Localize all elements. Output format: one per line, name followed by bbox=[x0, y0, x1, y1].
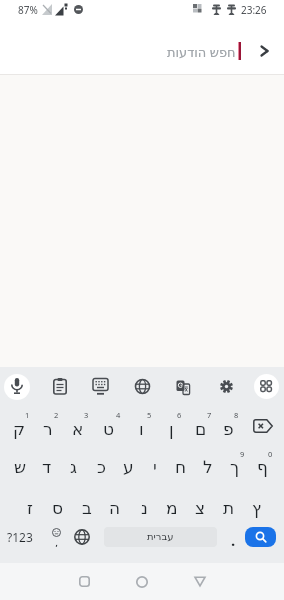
staticText: ה bbox=[109, 498, 121, 518]
staticText: 8 bbox=[234, 410, 239, 420]
staticText: ר bbox=[43, 419, 53, 439]
button[interactable]: א bbox=[64, 410, 92, 448]
button[interactable] bbox=[53, 378, 67, 395]
button[interactable]: ב bbox=[73, 489, 101, 527]
button[interactable]: ך bbox=[221, 448, 249, 486]
staticText: חפש הודעות bbox=[167, 43, 236, 61]
staticText: מ bbox=[166, 498, 178, 518]
button[interactable]: ה bbox=[101, 489, 129, 527]
button[interactable]: ת bbox=[215, 489, 243, 527]
staticText: נ bbox=[141, 498, 148, 518]
button[interactable]: ס bbox=[44, 489, 72, 527]
staticText: 9 bbox=[240, 449, 245, 459]
button[interactable]: ט bbox=[95, 410, 123, 448]
staticText: 6 bbox=[177, 410, 182, 420]
staticText: א bbox=[72, 419, 84, 439]
button[interactable] bbox=[245, 527, 276, 547]
button[interactable]: ג bbox=[60, 448, 88, 486]
staticText: פ bbox=[223, 419, 234, 439]
button[interactable]: מ bbox=[158, 489, 186, 527]
button[interactable]: פ bbox=[214, 410, 242, 448]
button[interactable] bbox=[253, 419, 273, 433]
button[interactable]: ו bbox=[127, 410, 155, 448]
button[interactable]: ם bbox=[187, 410, 215, 448]
staticText: ג bbox=[70, 457, 78, 477]
staticText: עברית bbox=[147, 531, 174, 543]
button[interactable] bbox=[258, 44, 270, 58]
button[interactable] bbox=[135, 379, 150, 394]
button[interactable]: עברית bbox=[104, 527, 217, 547]
button[interactable] bbox=[176, 380, 190, 395]
staticText: ש bbox=[14, 457, 27, 477]
staticText: ס bbox=[52, 498, 64, 518]
staticText: 0 bbox=[268, 449, 273, 459]
staticText: 5 bbox=[147, 410, 152, 420]
staticText: ?123 bbox=[7, 529, 33, 545]
staticText: ם bbox=[195, 419, 207, 439]
staticText: ב bbox=[82, 498, 92, 518]
staticText: 23:26 bbox=[241, 3, 267, 17]
button[interactable] bbox=[194, 576, 206, 587]
button[interactable]: ן bbox=[157, 410, 185, 448]
staticText: ת bbox=[223, 498, 235, 518]
staticText: ץ bbox=[252, 498, 262, 518]
staticText: ק bbox=[13, 419, 26, 439]
button[interactable] bbox=[4, 374, 30, 400]
staticText: 2 bbox=[54, 410, 59, 420]
button[interactable]: ק bbox=[5, 410, 33, 448]
staticText: ך bbox=[230, 457, 240, 477]
button[interactable]: . bbox=[226, 530, 240, 548]
button[interactable] bbox=[46, 524, 66, 544]
button[interactable]: ץ bbox=[243, 489, 271, 527]
button[interactable]: כ bbox=[87, 448, 115, 486]
button[interactable]: ש bbox=[6, 448, 34, 486]
staticText: 7 bbox=[207, 410, 212, 420]
staticText: 87% bbox=[18, 3, 38, 17]
staticText: ח bbox=[175, 457, 187, 477]
staticText: ד bbox=[42, 457, 52, 477]
button[interactable] bbox=[74, 529, 90, 545]
staticText: ע bbox=[123, 457, 134, 477]
button[interactable] bbox=[79, 576, 90, 587]
button[interactable]: צ bbox=[186, 489, 214, 527]
staticText: 3 bbox=[84, 410, 89, 420]
button[interactable]: ע bbox=[114, 448, 142, 486]
button[interactable] bbox=[93, 378, 108, 395]
staticText: י bbox=[153, 457, 157, 477]
staticText: כ bbox=[97, 457, 106, 477]
button[interactable]: ל bbox=[194, 448, 222, 486]
staticText: צ bbox=[195, 498, 206, 518]
button[interactable]: י bbox=[141, 448, 169, 486]
staticText: 1 bbox=[25, 410, 30, 420]
button[interactable] bbox=[219, 379, 234, 394]
button[interactable]: נ bbox=[130, 489, 158, 527]
staticText: ז bbox=[27, 498, 33, 518]
button[interactable]: ד bbox=[33, 448, 61, 486]
staticText: . bbox=[231, 530, 236, 548]
button[interactable] bbox=[136, 576, 148, 588]
staticText: ף bbox=[257, 457, 268, 477]
staticText: ן bbox=[169, 419, 174, 439]
staticText: ל bbox=[203, 457, 213, 477]
button[interactable]: ?123 bbox=[2, 525, 38, 549]
button[interactable]: ז bbox=[16, 489, 44, 527]
staticText: 4 bbox=[116, 410, 121, 420]
staticText: ו bbox=[139, 419, 144, 439]
staticText: ט bbox=[103, 419, 115, 439]
staticText: , bbox=[55, 533, 59, 547]
button[interactable]: ף bbox=[248, 448, 276, 486]
button[interactable]: ח bbox=[167, 448, 195, 486]
button[interactable]: ר bbox=[34, 410, 62, 448]
button[interactable] bbox=[254, 374, 279, 399]
